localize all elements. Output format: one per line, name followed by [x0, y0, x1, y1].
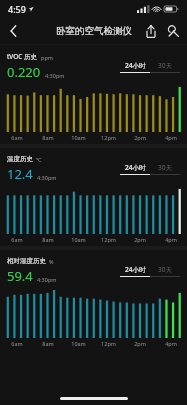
staticText: 0.220 [7, 63, 41, 81]
staticText: 4:30pm [45, 72, 65, 79]
staticText: 59.4 [7, 267, 33, 285]
staticText: 30天 [158, 163, 172, 172]
button[interactable]: 30天 [150, 163, 180, 172]
staticText: 30天 [158, 265, 172, 274]
staticText: 相对湿度历史 [7, 257, 46, 265]
staticText: 12pm [101, 236, 116, 243]
staticText: 10am [71, 134, 86, 141]
staticText: 12.4 [7, 165, 33, 183]
button[interactable]: 24小时 [120, 61, 150, 70]
button[interactable]: 24小时 [120, 265, 150, 274]
staticText: 卧室的空气检测仪 [56, 25, 132, 37]
button[interactable]: Settings [162, 20, 184, 42]
staticText: 6am [11, 236, 23, 243]
staticText: 8am [42, 340, 54, 347]
staticText: tVOC 历史 [7, 52, 38, 61]
staticText: 6am [11, 340, 23, 347]
staticText: 8am [42, 134, 54, 141]
button[interactable]: Back [0, 18, 26, 44]
staticText: 2pm [134, 340, 146, 347]
staticText: 12pm [101, 340, 116, 347]
staticText: 4:30pm [37, 276, 57, 283]
staticText: 2pm [134, 236, 146, 243]
staticText: ℃ [36, 156, 42, 163]
staticText: 10am [71, 340, 86, 347]
staticText: 24小时 [125, 265, 146, 274]
button[interactable]: 30天 [150, 265, 180, 274]
staticText: 24小时 [125, 163, 146, 172]
staticText: 12pm [101, 134, 116, 141]
staticText: ppm [41, 54, 53, 61]
staticText: 6am [11, 134, 23, 141]
staticText: 24小时 [125, 61, 146, 70]
staticText: 4:30pm [37, 174, 57, 181]
staticText: 4pm [165, 134, 177, 141]
button[interactable]: Share [140, 20, 162, 42]
staticText: 8am [42, 236, 54, 243]
staticText: % [49, 258, 54, 265]
staticText: 温度历史 [7, 155, 33, 163]
staticText: 30天 [158, 61, 172, 70]
staticText: 4:59 [8, 3, 26, 15]
staticText: 4pm [165, 340, 177, 347]
staticText: 2pm [134, 134, 146, 141]
button[interactable]: 24小时 [120, 163, 150, 172]
staticText: 4pm [165, 236, 177, 243]
staticText: 10am [71, 236, 86, 243]
button[interactable]: 30天 [150, 61, 180, 70]
